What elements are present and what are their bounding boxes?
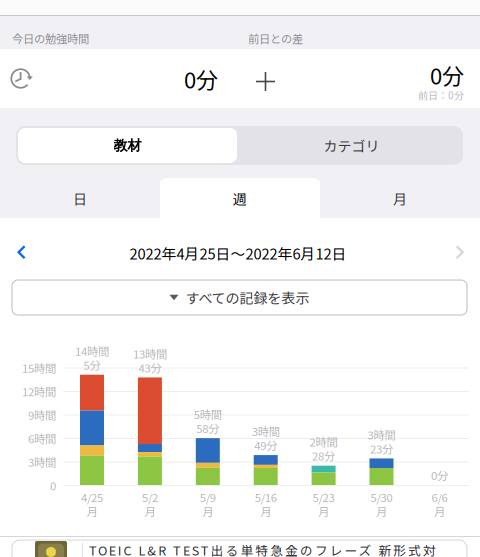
staticText: 月: [86, 503, 97, 519]
staticText: 5時間: [194, 406, 222, 422]
staticText: 3時間: [252, 423, 280, 439]
button[interactable]: TOEIC L&R TEST出る単特急金のフレーズ 新形式対応: [12, 540, 467, 557]
staticText: 43分: [138, 359, 161, 376]
staticText: 2時間: [310, 433, 338, 450]
staticText: 5/9: [200, 489, 216, 505]
staticText: 0分: [430, 59, 464, 91]
staticText: 3時間: [367, 426, 395, 443]
staticText: 月: [393, 188, 407, 209]
staticText: 0分: [431, 467, 448, 483]
staticText: 5/30: [370, 489, 392, 505]
staticText: 月: [434, 503, 445, 519]
staticText: 0分: [184, 63, 218, 95]
staticText: 教材: [113, 137, 141, 154]
staticText: 6/6: [431, 489, 447, 505]
staticText: 5/16: [255, 489, 277, 505]
staticText: 月: [202, 503, 213, 519]
staticText: カテゴリ: [323, 135, 379, 156]
staticText: 5/2: [142, 489, 158, 505]
button[interactable]: 週: [160, 178, 320, 219]
staticText: 12時間: [22, 383, 56, 399]
staticText: すべての記録を表示: [185, 287, 309, 308]
staticText: 9時間: [28, 406, 56, 423]
staticText: 28分: [312, 447, 335, 464]
staticText: 月: [318, 503, 329, 519]
staticText: 15時間: [22, 359, 56, 376]
staticText: 49分: [254, 437, 277, 453]
staticText: 月: [376, 503, 387, 519]
staticText: 日: [73, 188, 87, 209]
staticText: 14時間: [75, 342, 109, 359]
staticText: 6時間: [28, 430, 56, 446]
button[interactable]: すべての記録を表示: [12, 280, 467, 315]
button[interactable]: 前の週: [17, 245, 26, 259]
button[interactable]: 月: [320, 178, 480, 219]
staticText: 前日との差: [248, 30, 303, 46]
staticText: TOEIC L&R TEST出る単特急金のフレーズ 新形式対応: [89, 541, 451, 557]
button[interactable]: 日: [0, 178, 160, 219]
staticText: 5/23: [313, 489, 335, 505]
staticText: 2022年4月25日〜2022年6月12日: [129, 242, 346, 264]
staticText: 週: [233, 188, 247, 209]
button[interactable]: 教材: [18, 128, 237, 163]
staticText: 3時間: [28, 453, 56, 470]
staticText: 4/25: [81, 489, 103, 505]
staticText: 5分: [83, 356, 100, 373]
staticText: 58分: [196, 420, 219, 436]
staticText: 月: [260, 503, 271, 519]
button[interactable]: カテゴリ: [242, 128, 461, 163]
staticText: 今日の勉強時間: [12, 30, 89, 46]
staticText: 13時間: [133, 345, 167, 362]
staticText: 23分: [370, 440, 393, 457]
staticText: 0: [50, 477, 56, 493]
staticText: 前日：0分: [418, 88, 464, 102]
staticText: 月: [144, 503, 155, 519]
button[interactable]: 次の週: [455, 245, 464, 259]
